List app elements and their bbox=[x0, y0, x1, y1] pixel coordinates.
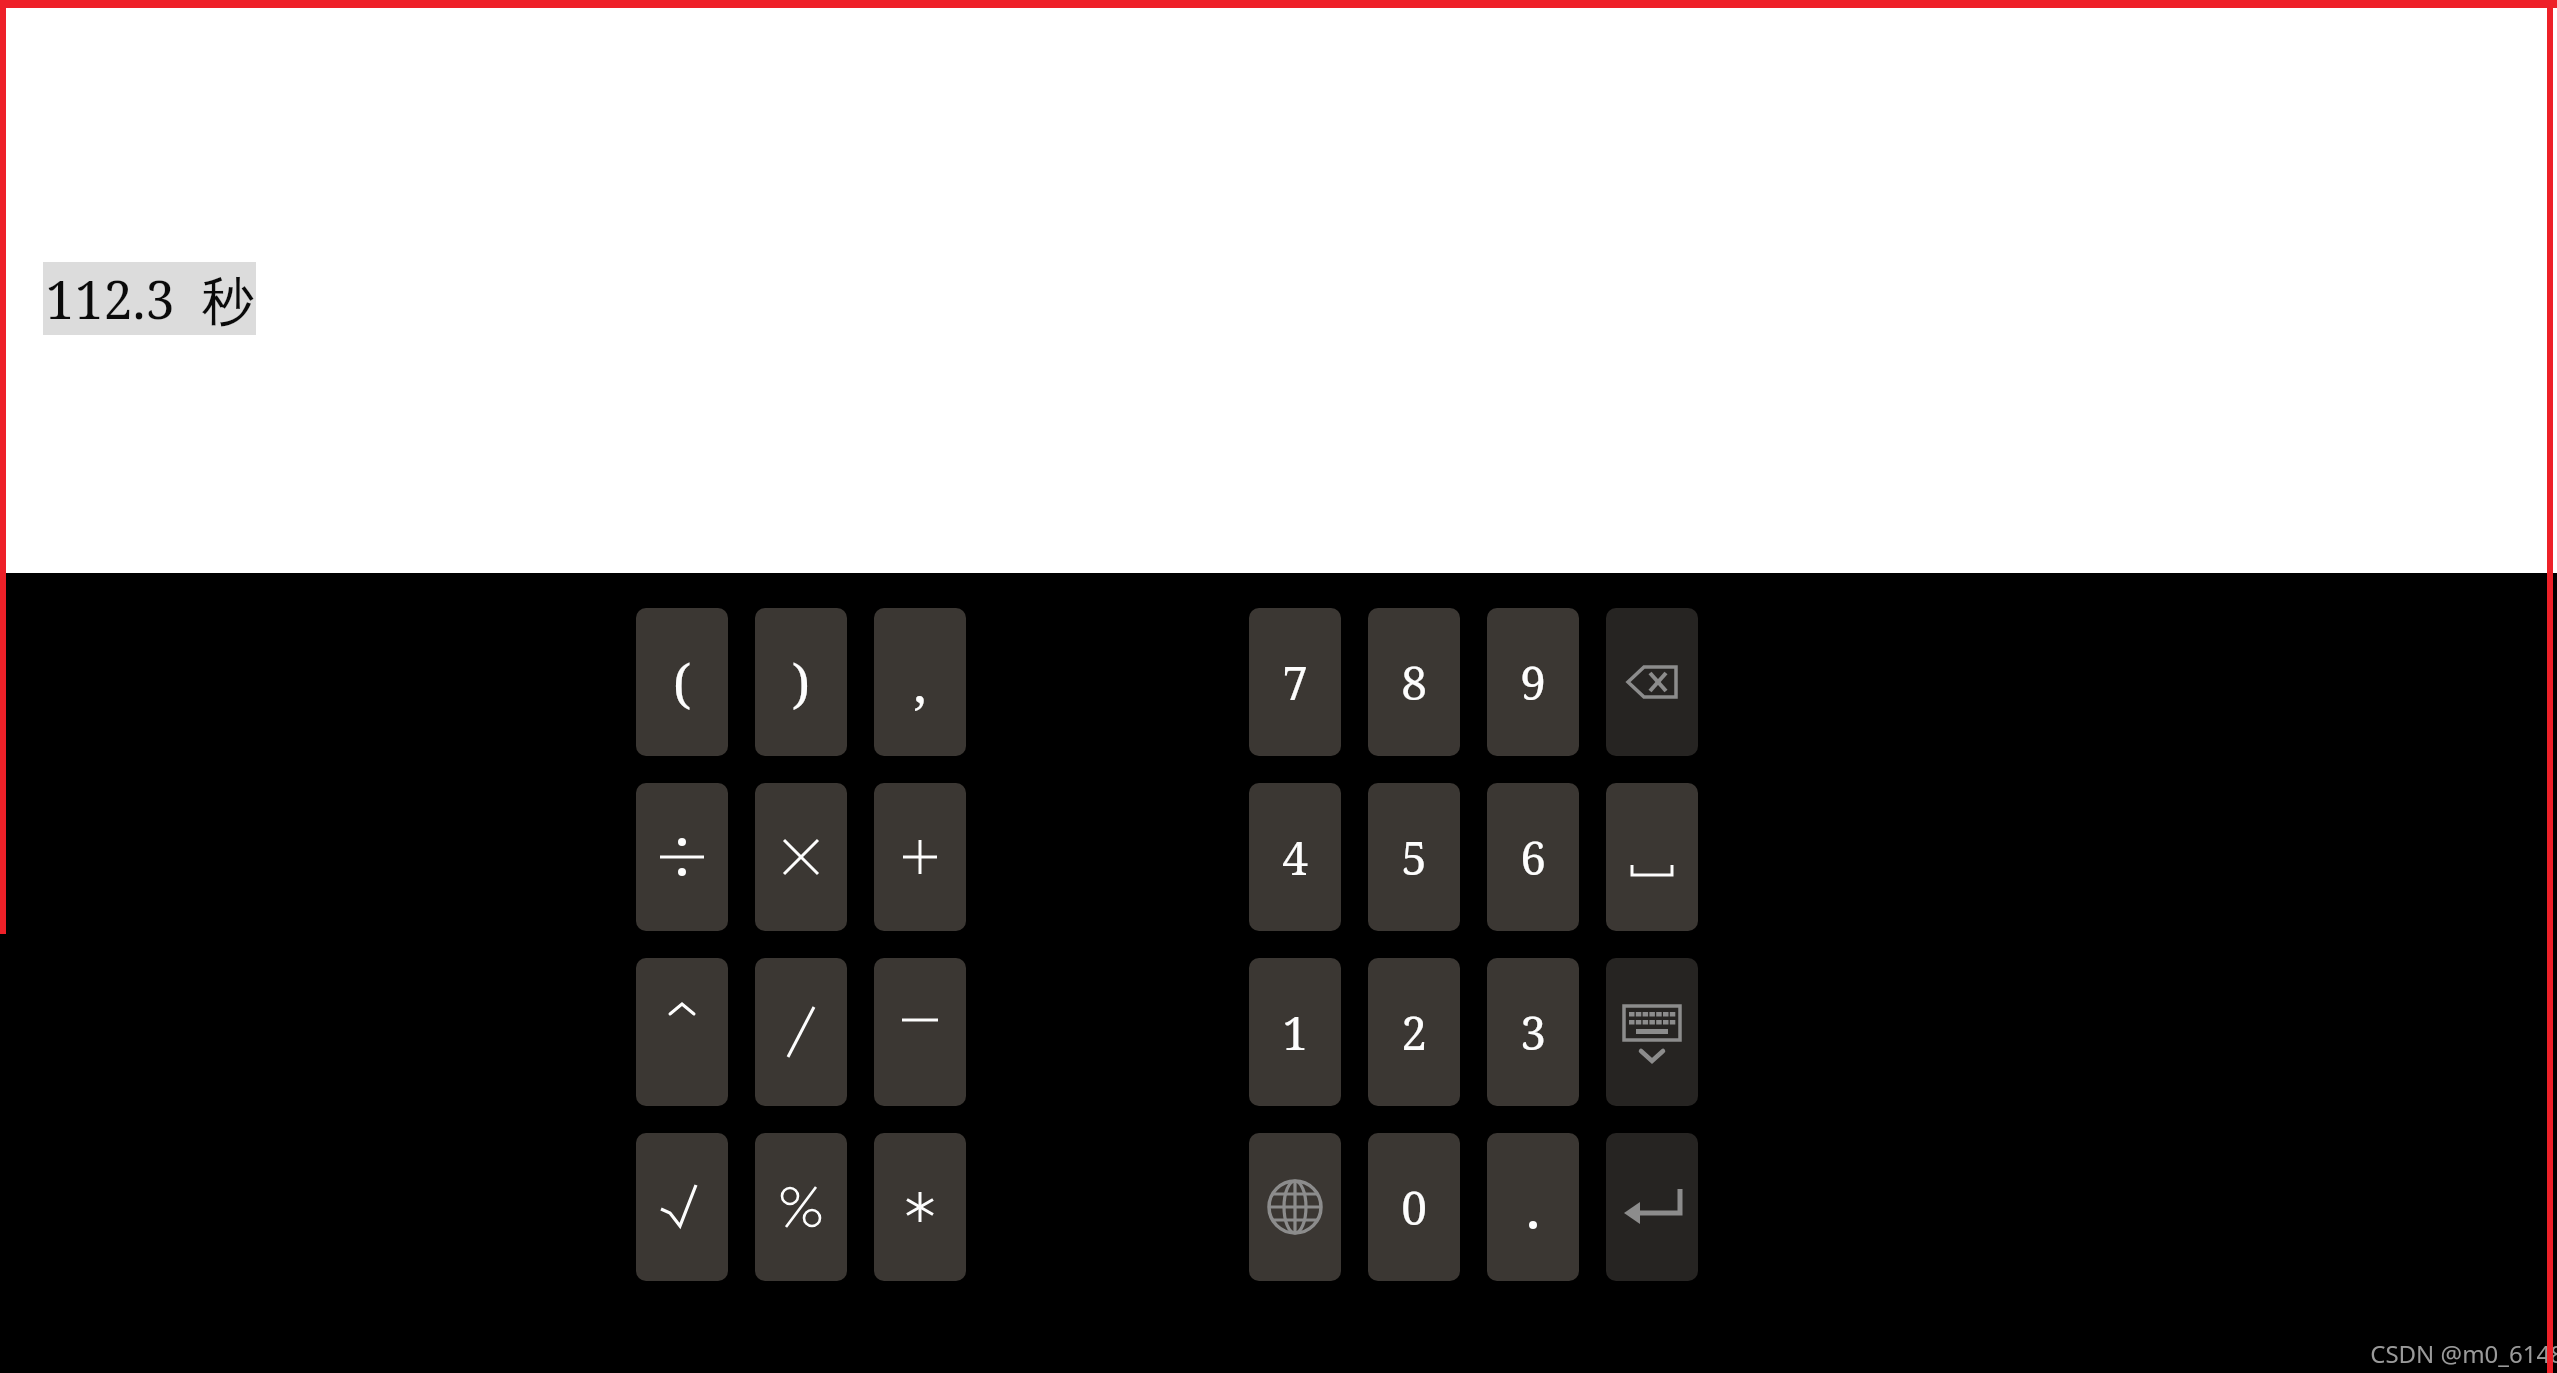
button[interactable]: , bbox=[874, 608, 966, 756]
button[interactable]: Asterisk bbox=[874, 1133, 966, 1281]
button[interactable]: Slash bbox=[755, 958, 847, 1106]
staticText: 1 bbox=[1282, 1001, 1308, 1064]
button[interactable]: Enter bbox=[1606, 1133, 1698, 1281]
button[interactable]: Multiply bbox=[755, 783, 847, 931]
staticText: 7 bbox=[1282, 651, 1308, 714]
staticText: 3 bbox=[1520, 1001, 1546, 1064]
button[interactable]: Divide bbox=[636, 783, 728, 931]
button[interactable]: 5 bbox=[1368, 783, 1460, 931]
button[interactable]: Hide keyboard bbox=[1606, 958, 1698, 1106]
staticText: 8 bbox=[1401, 651, 1427, 714]
button[interactable]: 6 bbox=[1487, 783, 1579, 931]
staticText: 112.3 秒 bbox=[45, 263, 254, 334]
button[interactable]: Minus bbox=[874, 958, 966, 1106]
staticText: 6 bbox=[1520, 826, 1546, 889]
button[interactable]: 1 bbox=[1249, 958, 1341, 1106]
staticText: 0 bbox=[1401, 1176, 1427, 1239]
button[interactable]: Plus bbox=[874, 783, 966, 931]
button[interactable]: 9 bbox=[1487, 608, 1579, 756]
staticText: 4 bbox=[1282, 826, 1308, 889]
staticText: , bbox=[913, 647, 927, 718]
staticText: CSDN @m0_61483225 bbox=[2370, 1337, 2557, 1370]
staticText: 9 bbox=[1520, 651, 1546, 714]
button[interactable]: 0 bbox=[1368, 1133, 1460, 1281]
staticText: ) bbox=[792, 647, 810, 718]
button[interactable]: 3 bbox=[1487, 958, 1579, 1106]
staticText: 5 bbox=[1401, 826, 1427, 889]
staticText: 2 bbox=[1401, 1001, 1427, 1064]
button[interactable]: 112.3 秒 bbox=[45, 263, 254, 334]
button[interactable]: Square root bbox=[636, 1133, 728, 1281]
button[interactable]: Power bbox=[636, 958, 728, 1106]
button[interactable]: 2 bbox=[1368, 958, 1460, 1106]
button[interactable]: Space bbox=[1606, 783, 1698, 931]
button[interactable]: ( bbox=[636, 608, 728, 756]
staticText: ( bbox=[673, 647, 691, 718]
button[interactable]: 7 bbox=[1249, 608, 1341, 756]
button[interactable]: Change language bbox=[1249, 1133, 1341, 1281]
button[interactable]: Backspace bbox=[1606, 608, 1698, 756]
button[interactable]: Decimal point bbox=[1487, 1133, 1579, 1281]
button[interactable]: ) bbox=[755, 608, 847, 756]
button[interactable]: 8 bbox=[1368, 608, 1460, 756]
button[interactable]: 4 bbox=[1249, 783, 1341, 931]
button[interactable]: Percent bbox=[755, 1133, 847, 1281]
